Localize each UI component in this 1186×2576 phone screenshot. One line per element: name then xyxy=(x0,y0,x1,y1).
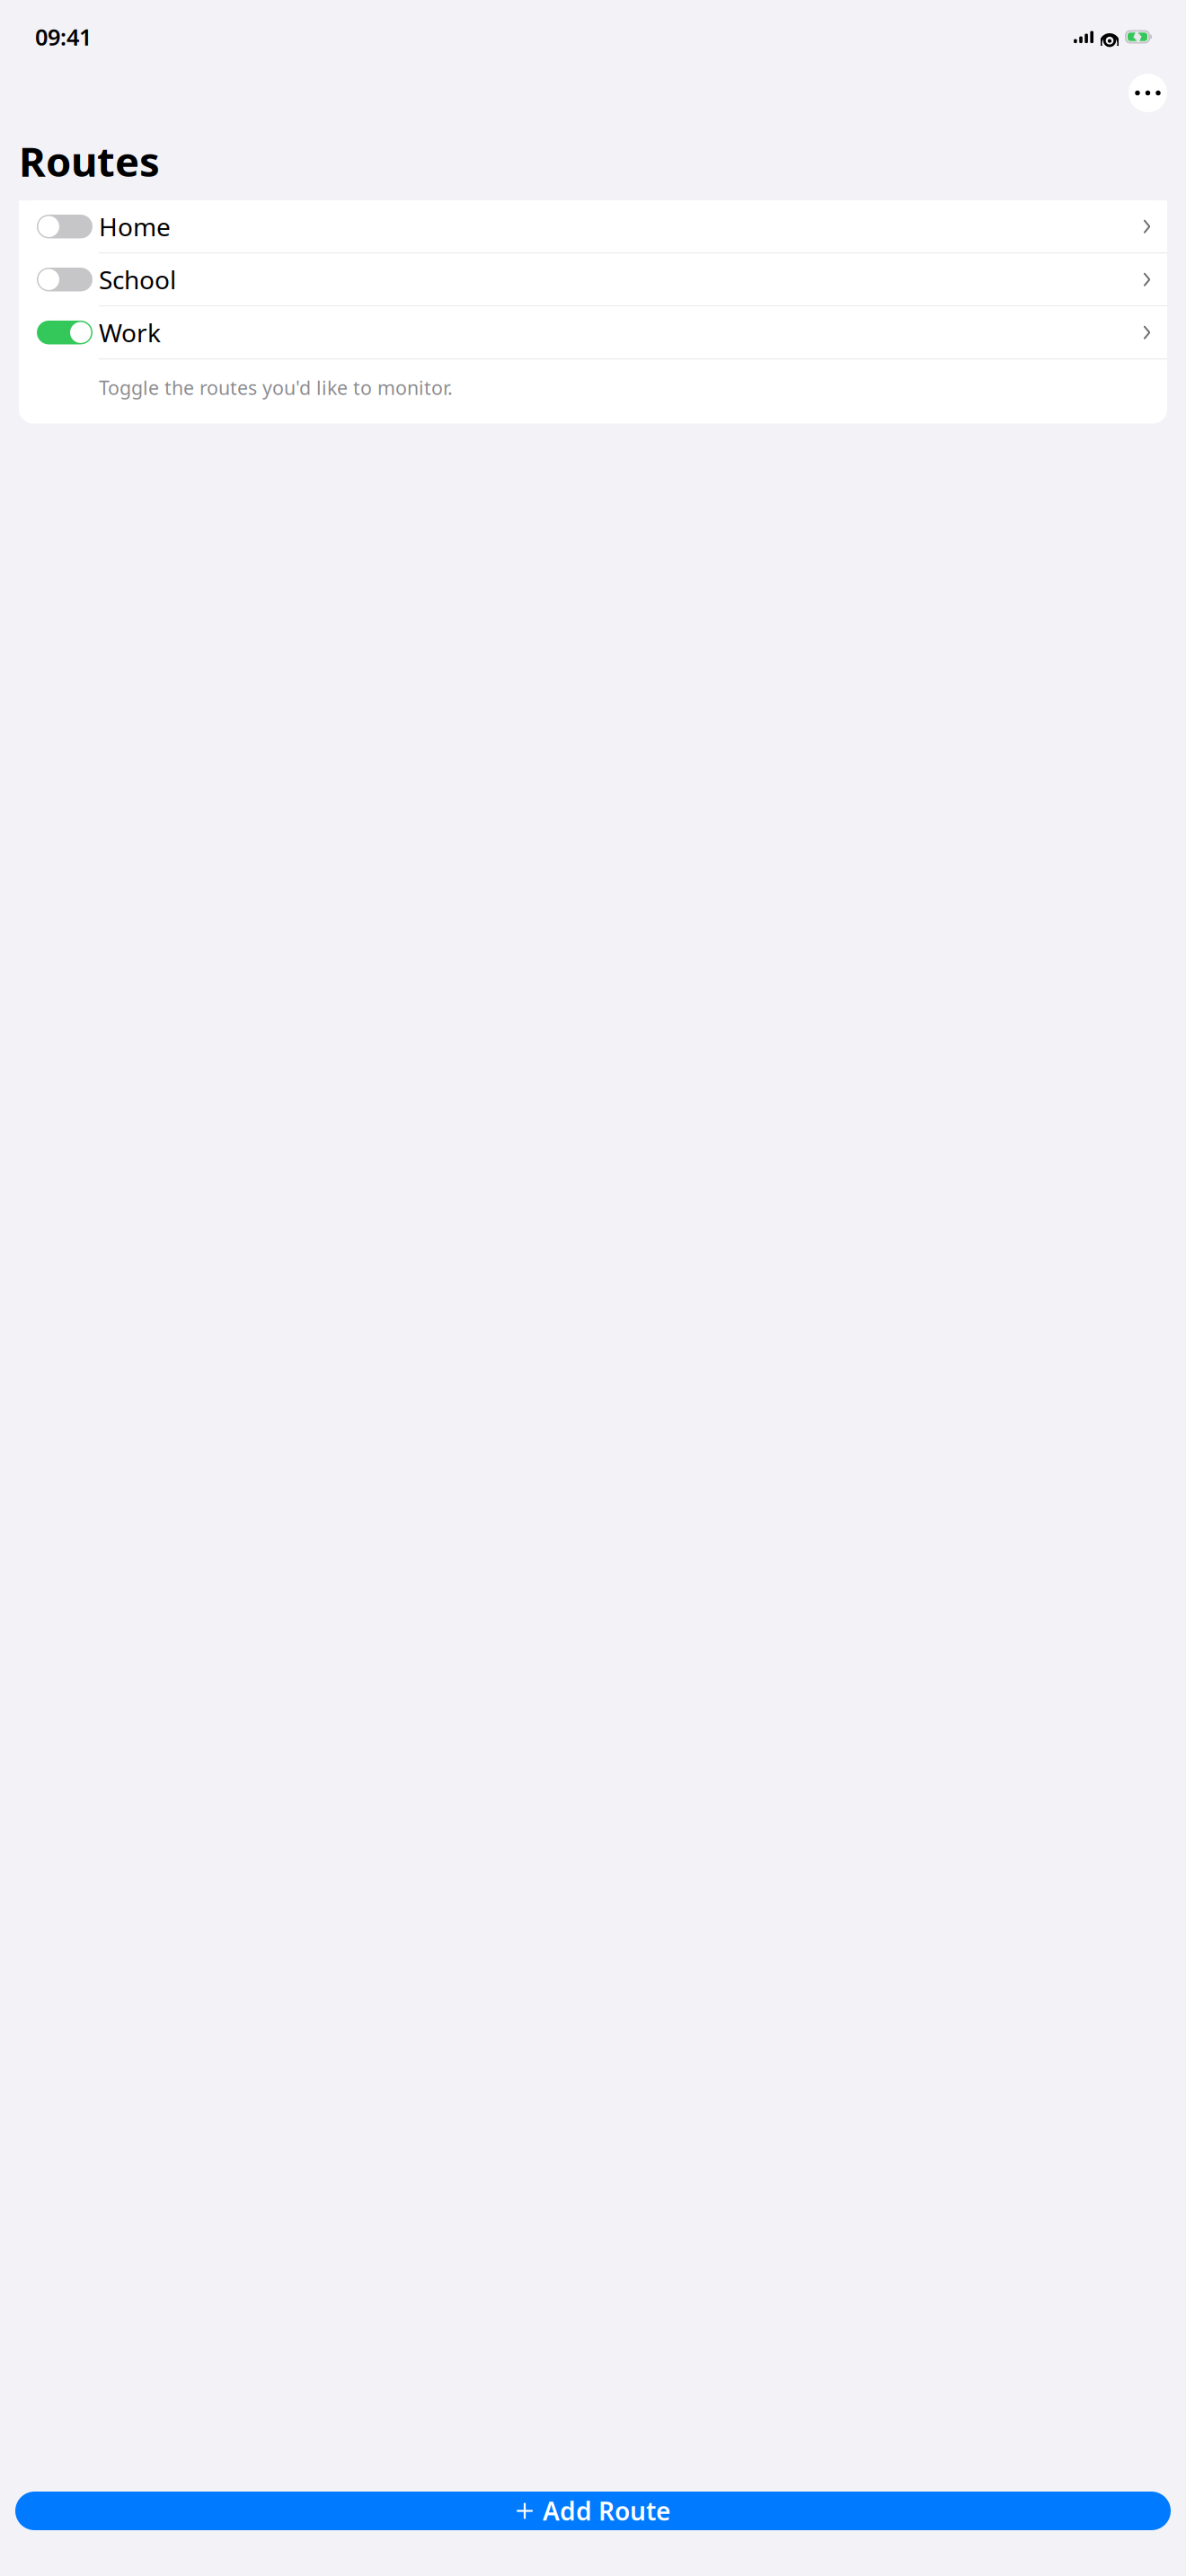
staticText: School xyxy=(99,263,176,296)
staticText: 09:41 xyxy=(35,22,92,52)
button[interactable]: Home xyxy=(19,200,1167,253)
button[interactable]: School xyxy=(19,253,1167,306)
button[interactable]: Work xyxy=(19,306,1167,359)
button[interactable]: More options xyxy=(1128,74,1167,112)
staticText: Home xyxy=(99,210,171,243)
button[interactable]: Add Route xyxy=(15,2492,1171,2530)
staticText: Work xyxy=(99,316,161,349)
staticText: Routes xyxy=(19,134,160,188)
staticText: Toggle the routes you'd like to monitor. xyxy=(99,375,453,400)
staticText: Add Route xyxy=(543,2494,670,2528)
